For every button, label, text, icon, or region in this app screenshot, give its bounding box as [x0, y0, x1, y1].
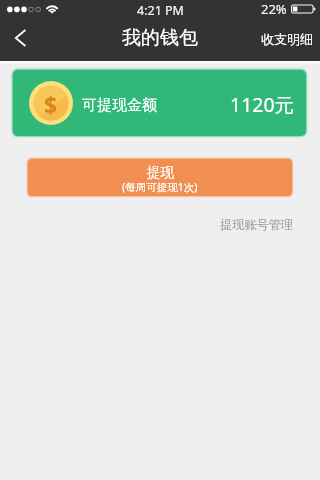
- button[interactable]: Back: [0, 21, 42, 60]
- staticText: 提现账号管理: [220, 217, 294, 232]
- button[interactable]: 提现账号管理: [212, 213, 302, 236]
- staticText: 提现: [147, 164, 174, 181]
- staticText: 收支明细: [261, 31, 313, 47]
- staticText: 可提现金额: [82, 96, 157, 115]
- staticText: 22%: [261, 0, 287, 18]
- button[interactable]: 提现: [28, 159, 292, 196]
- staticText: 我的钱包: [122, 26, 198, 50]
- staticText: 4:21 PM: [137, 2, 184, 19]
- button[interactable]: $: [13, 70, 306, 136]
- staticText: 1120元: [230, 91, 295, 118]
- button[interactable]: 收支明细: [249, 24, 320, 58]
- staticText: $: [44, 89, 58, 120]
- staticText: (每周可提现1次): [122, 180, 198, 194]
